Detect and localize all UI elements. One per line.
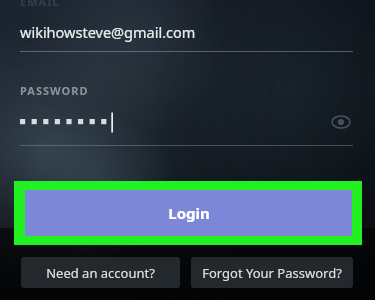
button[interactable]: Need an account? <box>21 257 180 288</box>
button[interactable]: Login <box>14 181 362 245</box>
button[interactable]: Show password <box>327 108 355 136</box>
button[interactable]: Forgot Your Password? <box>191 257 353 288</box>
staticText: EMAIL <box>20 0 60 9</box>
staticText: Forgot Your Password? <box>202 264 342 282</box>
staticText: PASSWORD <box>20 83 89 98</box>
staticText: wikihowsteve@gmail.com <box>20 22 196 42</box>
staticText: Login <box>168 203 210 223</box>
staticText: Need an account? <box>46 264 155 282</box>
